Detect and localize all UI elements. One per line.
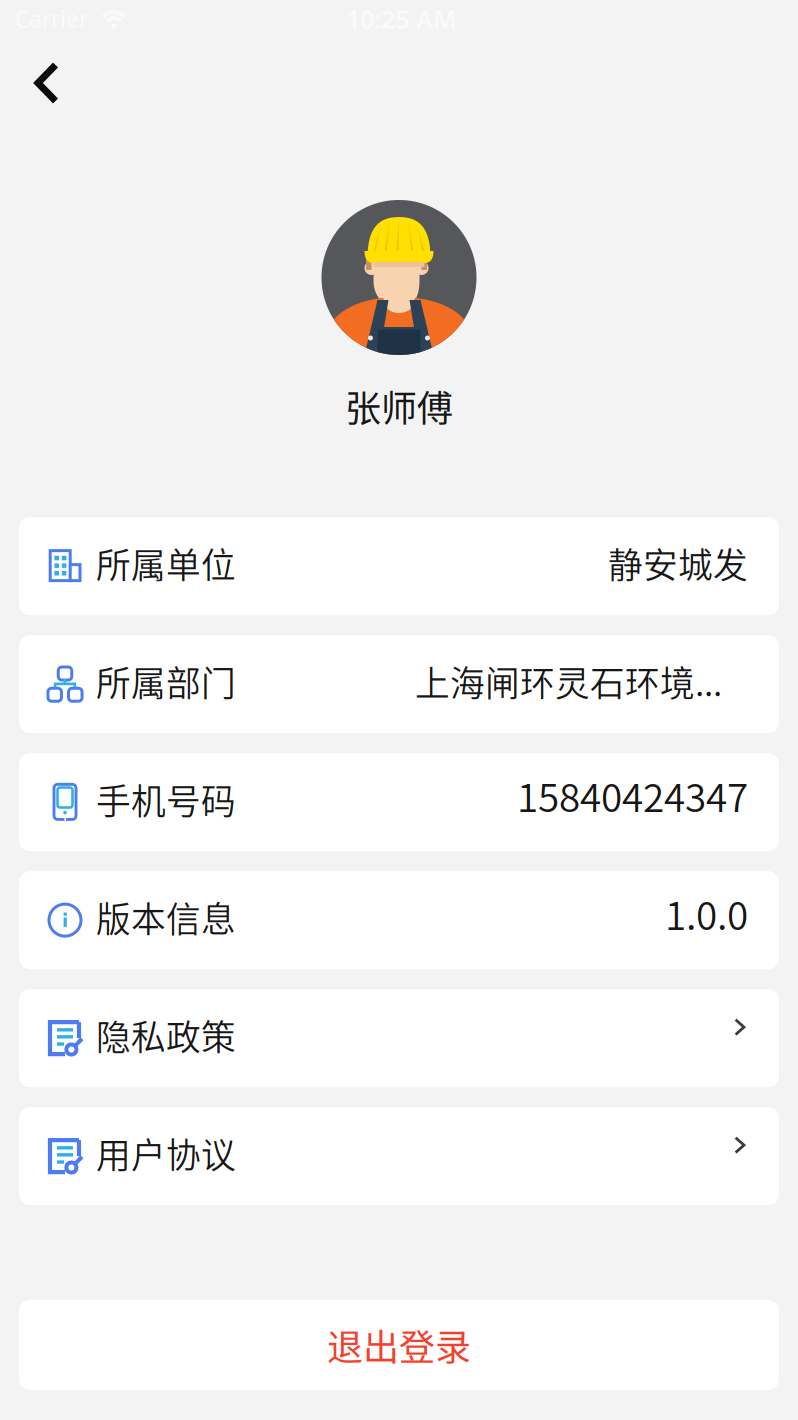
staticText: 退出登录 — [327, 1319, 471, 1371]
button[interactable]: 退出登录 — [0, 1300, 798, 1390]
staticText: 所属单位 — [96, 538, 236, 588]
staticText: 15840424347 — [517, 767, 748, 823]
staticText: 隐私政策 — [96, 1010, 236, 1060]
staticText: 上海闸环灵石环境... — [415, 656, 722, 706]
button[interactable]: 所属单位 — [0, 517, 798, 615]
button[interactable]: Back — [5, 45, 78, 113]
staticText: 手机号码 — [96, 774, 236, 824]
staticText: 张师傅 — [345, 380, 453, 432]
staticText: 静安城发 — [608, 538, 748, 588]
button[interactable]: 手机号码 — [0, 753, 798, 851]
button[interactable]: 所属部门 — [0, 635, 798, 733]
staticText: 用户协议 — [96, 1128, 236, 1178]
staticText: 版本信息 — [96, 892, 236, 942]
button[interactable]: 版本信息 — [0, 871, 798, 969]
button[interactable]: 隐私政策 — [0, 989, 798, 1087]
staticText: 所属部门 — [96, 656, 236, 706]
staticText: 1.0.0 — [665, 885, 748, 941]
button[interactable]: 用户协议 — [0, 1107, 798, 1205]
